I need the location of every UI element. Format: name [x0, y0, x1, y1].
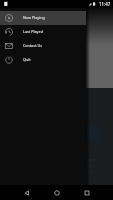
button[interactable]: Quit: [0, 53, 86, 67]
button[interactable]: Recent apps: [79, 185, 95, 200]
button[interactable]: Home: [49, 185, 65, 200]
button[interactable]: Last Played: [0, 25, 86, 39]
staticText: Now Playing: [23, 15, 45, 20]
staticText: 11:47: [99, 1, 111, 7]
staticText: Last Played: [23, 29, 43, 34]
button[interactable]: Back: [19, 185, 35, 200]
button[interactable]: Now Playing: [0, 11, 86, 25]
staticText: Quit: [23, 57, 31, 62]
button[interactable]: Contact Us: [0, 39, 86, 53]
staticText: Contact Us: [23, 43, 43, 48]
